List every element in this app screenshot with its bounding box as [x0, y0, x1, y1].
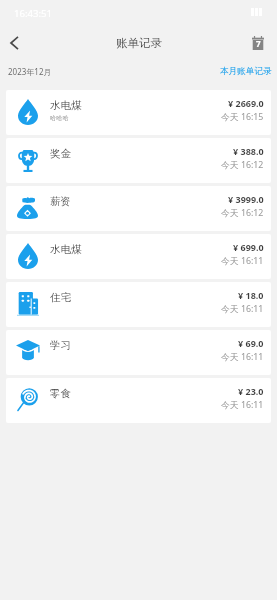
staticText: 今天 16:12 [221, 207, 264, 219]
button[interactable]: Back [0, 28, 27, 60]
button[interactable]: 奖金 [6, 138, 271, 183]
staticText: 奖金 [50, 147, 71, 160]
staticText: 水电煤 [50, 243, 82, 256]
button[interactable]: 零食 [6, 378, 271, 423]
staticText: 7 [256, 38, 261, 49]
staticText: 16:43:51 [14, 7, 53, 20]
button[interactable]: 学习 [6, 330, 271, 375]
staticText: 今天 16:11 [221, 351, 264, 363]
staticText: 零食 [50, 387, 71, 400]
button[interactable]: Calendar [250, 35, 266, 51]
staticText: ¥ 2669.0 [228, 97, 264, 109]
staticText: ¥ 69.0 [238, 337, 264, 349]
staticText: ¥ 699.0 [233, 241, 264, 253]
staticText: 2023年12月 [8, 66, 52, 77]
staticText: 账单记录 [116, 36, 162, 50]
button[interactable]: 薪资 [6, 186, 271, 231]
staticText: 今天 16:12 [221, 159, 264, 171]
staticText: ¥ 18.0 [238, 289, 264, 301]
button[interactable]: 水电煤 [6, 234, 271, 279]
staticText: ¥ 388.0 [233, 145, 264, 157]
button[interactable]: 住宅 [6, 282, 271, 327]
staticText: 今天 16:11 [221, 399, 264, 411]
button[interactable]: 水电煤 [6, 90, 271, 135]
staticText: 今天 16:11 [221, 303, 264, 315]
staticText: 住宅 [50, 291, 71, 304]
staticText: ¥ 23.0 [238, 385, 264, 397]
staticText: ¥ 3999.0 [228, 193, 264, 205]
staticText: 哈哈哈 [50, 114, 69, 122]
staticText: 薪资 [50, 195, 71, 208]
staticText: 学习 [50, 339, 71, 352]
button[interactable]: 本月账单记录 [220, 66, 277, 77]
staticText: 今天 16:11 [221, 255, 264, 267]
staticText: 水电煤 [50, 99, 82, 112]
staticText: 今天 16:15 [221, 111, 264, 123]
